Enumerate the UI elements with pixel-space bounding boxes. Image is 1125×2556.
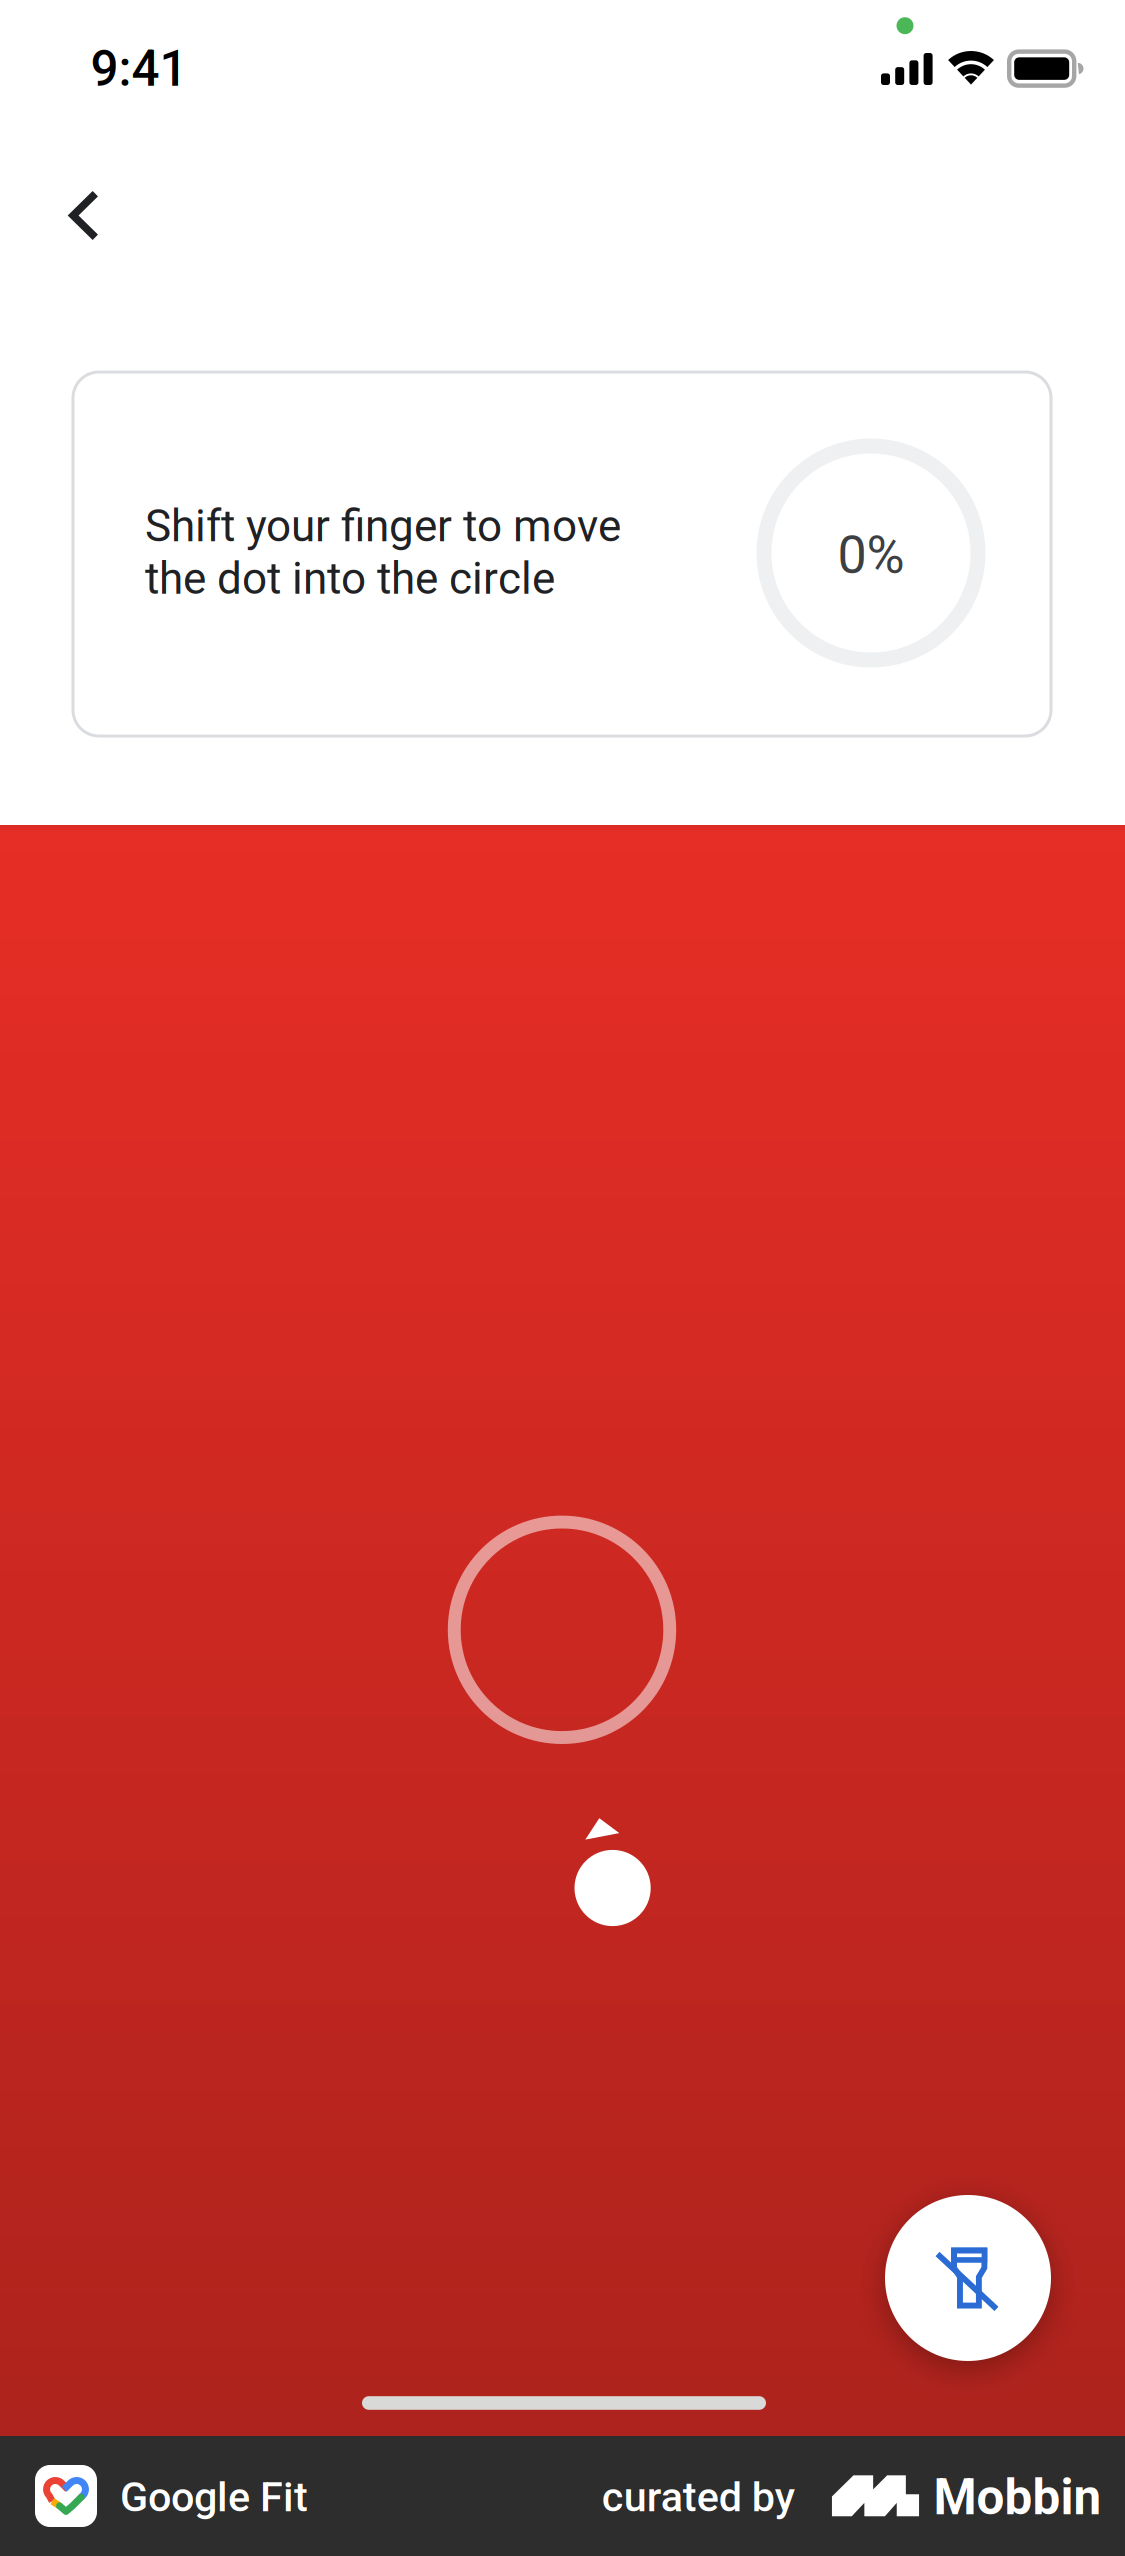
staticText: Google Fit [120,2473,308,2521]
staticText: Mobbin [934,2469,1102,2526]
button[interactable]: Back [25,158,141,274]
staticText: 9:41 [90,40,187,98]
staticText: 0% [837,524,904,585]
button[interactable]: Turn flashlight on [885,2195,1051,2361]
staticText: curated by [602,2473,795,2521]
staticText: Shift your finger to move the dot into t… [145,500,621,604]
